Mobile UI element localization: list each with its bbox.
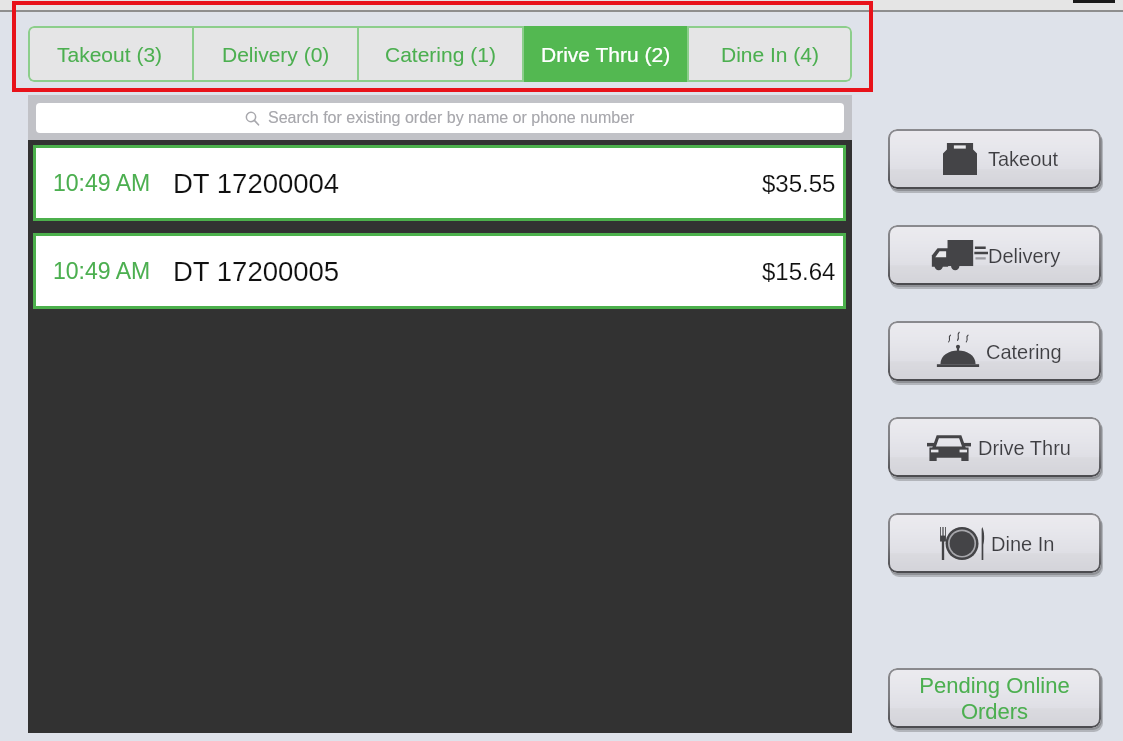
staticText: Dine In <box>991 533 1055 555</box>
staticText: Takeout <box>988 148 1059 170</box>
button[interactable]: 10:49 AM <box>33 233 846 309</box>
button[interactable]: Delivery (0) <box>194 26 357 82</box>
staticText: DT 17200005 <box>173 256 340 287</box>
staticText: Catering (1) <box>385 43 496 66</box>
staticText: Drive Thru (2) <box>541 43 671 66</box>
staticText: Delivery (0) <box>222 43 330 66</box>
staticText: Catering <box>986 341 1062 363</box>
button[interactable]: Search for existing order by name or pho… <box>36 103 844 133</box>
button[interactable]: Drive Thru (2) <box>524 26 687 82</box>
button[interactable]: Dine In <box>888 513 1101 573</box>
button[interactable]: Pending Online Orders <box>888 668 1101 728</box>
button[interactable]: Takeout (3) <box>28 26 192 82</box>
staticText: $15.64 <box>762 258 836 285</box>
button[interactable]: Catering (1) <box>359 26 522 82</box>
staticText: Dine In (4) <box>721 43 820 66</box>
staticText: Drive Thru <box>978 437 1071 459</box>
button[interactable]: Catering <box>888 321 1101 381</box>
staticText: Delivery <box>988 245 1061 267</box>
button[interactable]: Delivery <box>888 225 1101 285</box>
staticText: Search for existing order by name or pho… <box>268 109 635 127</box>
staticText: 10:49 AM <box>53 258 151 284</box>
staticText: Takeout (3) <box>57 43 163 66</box>
button[interactable]: 10:49 AM <box>33 145 846 221</box>
button[interactable]: Drive Thru <box>888 417 1101 477</box>
button[interactable]: Dine In (4) <box>689 26 852 82</box>
staticText: DT 17200004 <box>173 168 340 199</box>
staticText: 10:49 AM <box>53 170 151 196</box>
button[interactable]: Takeout <box>888 129 1101 189</box>
staticText: $35.55 <box>762 170 836 197</box>
staticText: Pending Online Orders <box>919 673 1070 724</box>
